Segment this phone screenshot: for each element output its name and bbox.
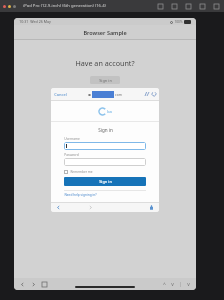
staticText: Remember me <box>70 170 93 174</box>
button[interactable]: Forward <box>31 282 36 287</box>
button[interactable]: Toolbar action 3 <box>185 3 192 10</box>
button[interactable]: Remember me <box>64 170 93 174</box>
button[interactable]: Need help signing in? <box>64 193 97 197</box>
staticText: ^ <box>163 281 166 288</box>
button[interactable] <box>64 158 146 166</box>
button[interactable]: Sign in <box>64 177 146 186</box>
staticText: com <box>115 92 122 97</box>
button[interactable]: Toolbar action 5 <box>213 3 220 10</box>
button[interactable]: Sign in <box>90 76 120 84</box>
button[interactable]: Forward <box>88 205 93 210</box>
button[interactable]: Back <box>56 205 61 210</box>
button[interactable]: Back <box>20 282 25 287</box>
staticText: | <box>179 281 182 288</box>
button[interactable]: Share <box>149 205 154 210</box>
button[interactable]: Toolbar action 2 <box>171 3 178 10</box>
staticText: Browser Sample <box>83 29 127 36</box>
button[interactable] <box>64 142 146 150</box>
staticText: Sign in <box>98 127 113 133</box>
staticText: Have an account? <box>75 58 135 68</box>
staticText: v <box>171 281 174 288</box>
staticText: v <box>187 281 190 288</box>
staticText: iPad Pro (12.9-inch) (6th generation) (1… <box>23 3 106 9</box>
staticText: 100% <box>174 20 183 24</box>
button[interactable]: Reload <box>152 92 156 96</box>
button[interactable]: Cancel <box>54 92 67 97</box>
button[interactable]: Text size <box>145 92 149 96</box>
staticText: Sign in <box>99 179 112 184</box>
staticText: Password <box>64 153 79 157</box>
staticText: 10:31 Wed 26 May <box>19 19 51 24</box>
staticText: Sign in <box>99 78 112 83</box>
staticText: ka <box>107 109 112 115</box>
button[interactable]: Tabs <box>42 282 47 287</box>
button[interactable]: Toolbar action 1 <box>157 3 164 10</box>
staticText: Username <box>64 137 80 141</box>
button[interactable]: Toolbar action 4 <box>199 3 206 10</box>
